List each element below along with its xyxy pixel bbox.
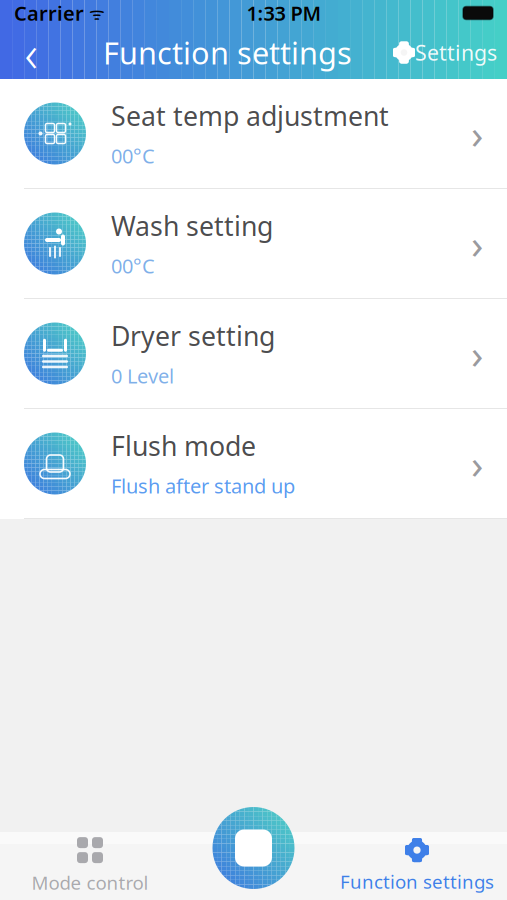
staticText: Seat temp adjustment [111, 98, 389, 133]
staticText: Wash setting [111, 208, 273, 243]
button[interactable]: Settings [393, 26, 507, 79]
staticText: › [471, 327, 483, 380]
staticText: ᯤ [84, 1, 105, 24]
staticText: › [471, 217, 483, 270]
staticText: Flush mode [111, 428, 256, 463]
staticText: 00°C [111, 252, 155, 279]
staticText: ‹ [24, 19, 37, 86]
button[interactable]: Mode control [0, 832, 180, 900]
button[interactable]: Stop [212, 807, 294, 889]
staticText: 1:33 PM [246, 0, 321, 26]
staticText: Function settings [103, 32, 352, 73]
staticText: › [471, 437, 483, 490]
staticText: Carrier [14, 0, 84, 26]
button[interactable]: Dryer setting [0, 299, 507, 409]
button[interactable]: Wash setting [0, 189, 507, 299]
staticText: Settings [415, 38, 497, 67]
staticText: Function settings [340, 869, 494, 894]
staticText: › [471, 107, 483, 160]
button[interactable]: Back [0, 26, 62, 79]
staticText: Flush after stand up [111, 472, 295, 499]
staticText: 00°C [111, 142, 155, 169]
staticText: Mode control [31, 870, 148, 895]
button[interactable]: Seat temp adjustment [0, 79, 507, 189]
staticText: 0 Level [111, 362, 174, 389]
button[interactable]: Flush mode [0, 409, 507, 519]
staticText: Dryer setting [111, 318, 275, 353]
button[interactable]: Function settings [327, 832, 507, 900]
